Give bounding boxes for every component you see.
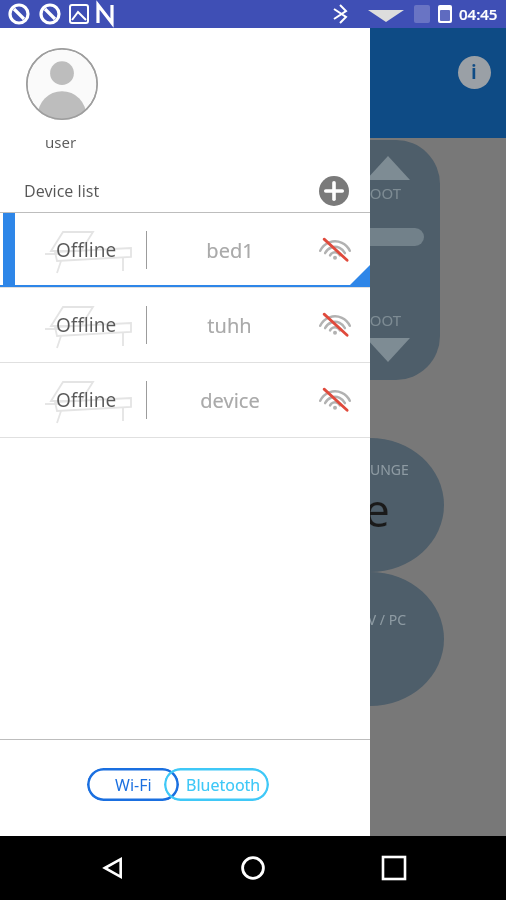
staticText: FOOT [362,183,402,203]
button[interactable]: Add device [318,175,350,207]
button[interactable]: Recents [366,840,422,896]
button[interactable]: Wi-Fi [87,768,179,801]
staticText: 04:45 [459,4,498,24]
staticText: Offline [56,387,117,413]
staticText: Wi-Fi [115,774,152,796]
staticText: user [45,132,77,152]
button[interactable]: Info [456,54,492,90]
staticText: Offline [56,312,117,338]
button[interactable]: Home [225,840,281,896]
staticText: TV / PC [360,610,406,629]
button[interactable]: Offline [0,213,370,287]
staticText: i [471,59,477,85]
staticText: FOOT [362,310,402,330]
staticText: LOUNGE [352,460,409,479]
staticText: Offline [56,237,117,263]
staticText: e [364,478,390,541]
staticText: bed1 [206,237,254,264]
other: Not connected [312,302,358,348]
button[interactable]: Offline [0,363,370,437]
other: Not connected [312,377,358,423]
staticText: Bluetooth [186,774,261,796]
staticText: Device list [24,180,100,202]
other: Not connected [312,227,358,273]
button[interactable]: Offline [0,288,370,362]
button[interactable]: Back [85,840,141,896]
staticText: device [200,387,260,414]
staticText: tuhh [207,312,252,339]
button[interactable]: Bluetooth [164,768,269,801]
